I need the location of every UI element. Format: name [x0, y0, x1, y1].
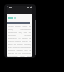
button[interactable]: [8, 17, 16, 19]
staticText: Lorem ipsum dolor sit amet, consectetur …: [8, 25, 31, 57]
